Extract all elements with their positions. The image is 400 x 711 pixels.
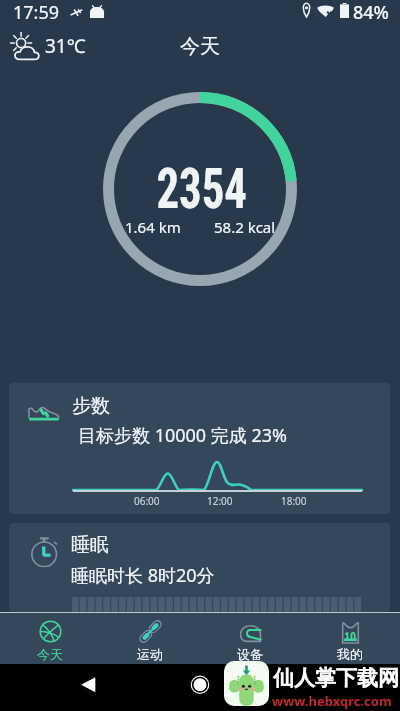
staticText: 目标步数 10000 完成 23%	[78, 423, 288, 448]
staticText: 1.64 km	[125, 217, 181, 237]
staticText: 步数	[72, 394, 110, 418]
staticText: 06:00	[134, 494, 160, 508]
button[interactable]: Back	[73, 672, 103, 702]
staticText: 12:00	[207, 494, 233, 508]
button[interactable]: 步数	[9, 383, 390, 514]
staticText: 仙人掌下载网	[273, 665, 399, 691]
staticText: 17:59	[13, 0, 60, 24]
staticText: 18:00	[281, 494, 307, 508]
button[interactable]: 10	[300, 613, 400, 664]
staticText: 84%	[353, 0, 389, 24]
staticText: 今天	[37, 646, 63, 662]
staticText: 今天	[0, 34, 400, 59]
staticText: 我的	[337, 646, 363, 662]
button[interactable]: 今天	[0, 613, 100, 664]
button[interactable]: Weather 31 degrees	[6, 30, 89, 61]
staticText: 睡眠	[71, 533, 109, 557]
button[interactable]: 设备	[200, 613, 300, 664]
button[interactable]: Home	[185, 672, 215, 702]
staticText: 设备	[237, 646, 263, 662]
staticText: 58.2 kcal	[214, 217, 276, 237]
staticText: 31℃	[45, 33, 86, 59]
button[interactable]: 睡眠	[9, 523, 390, 612]
staticText: 睡眠时长 8时20分	[71, 563, 215, 588]
staticText: 运动	[137, 646, 163, 662]
staticText: 10	[344, 630, 357, 644]
staticText: www.hebxqrc.com	[272, 692, 392, 710]
staticText: 2354	[156, 156, 248, 222]
button[interactable]: 运动	[100, 613, 200, 664]
